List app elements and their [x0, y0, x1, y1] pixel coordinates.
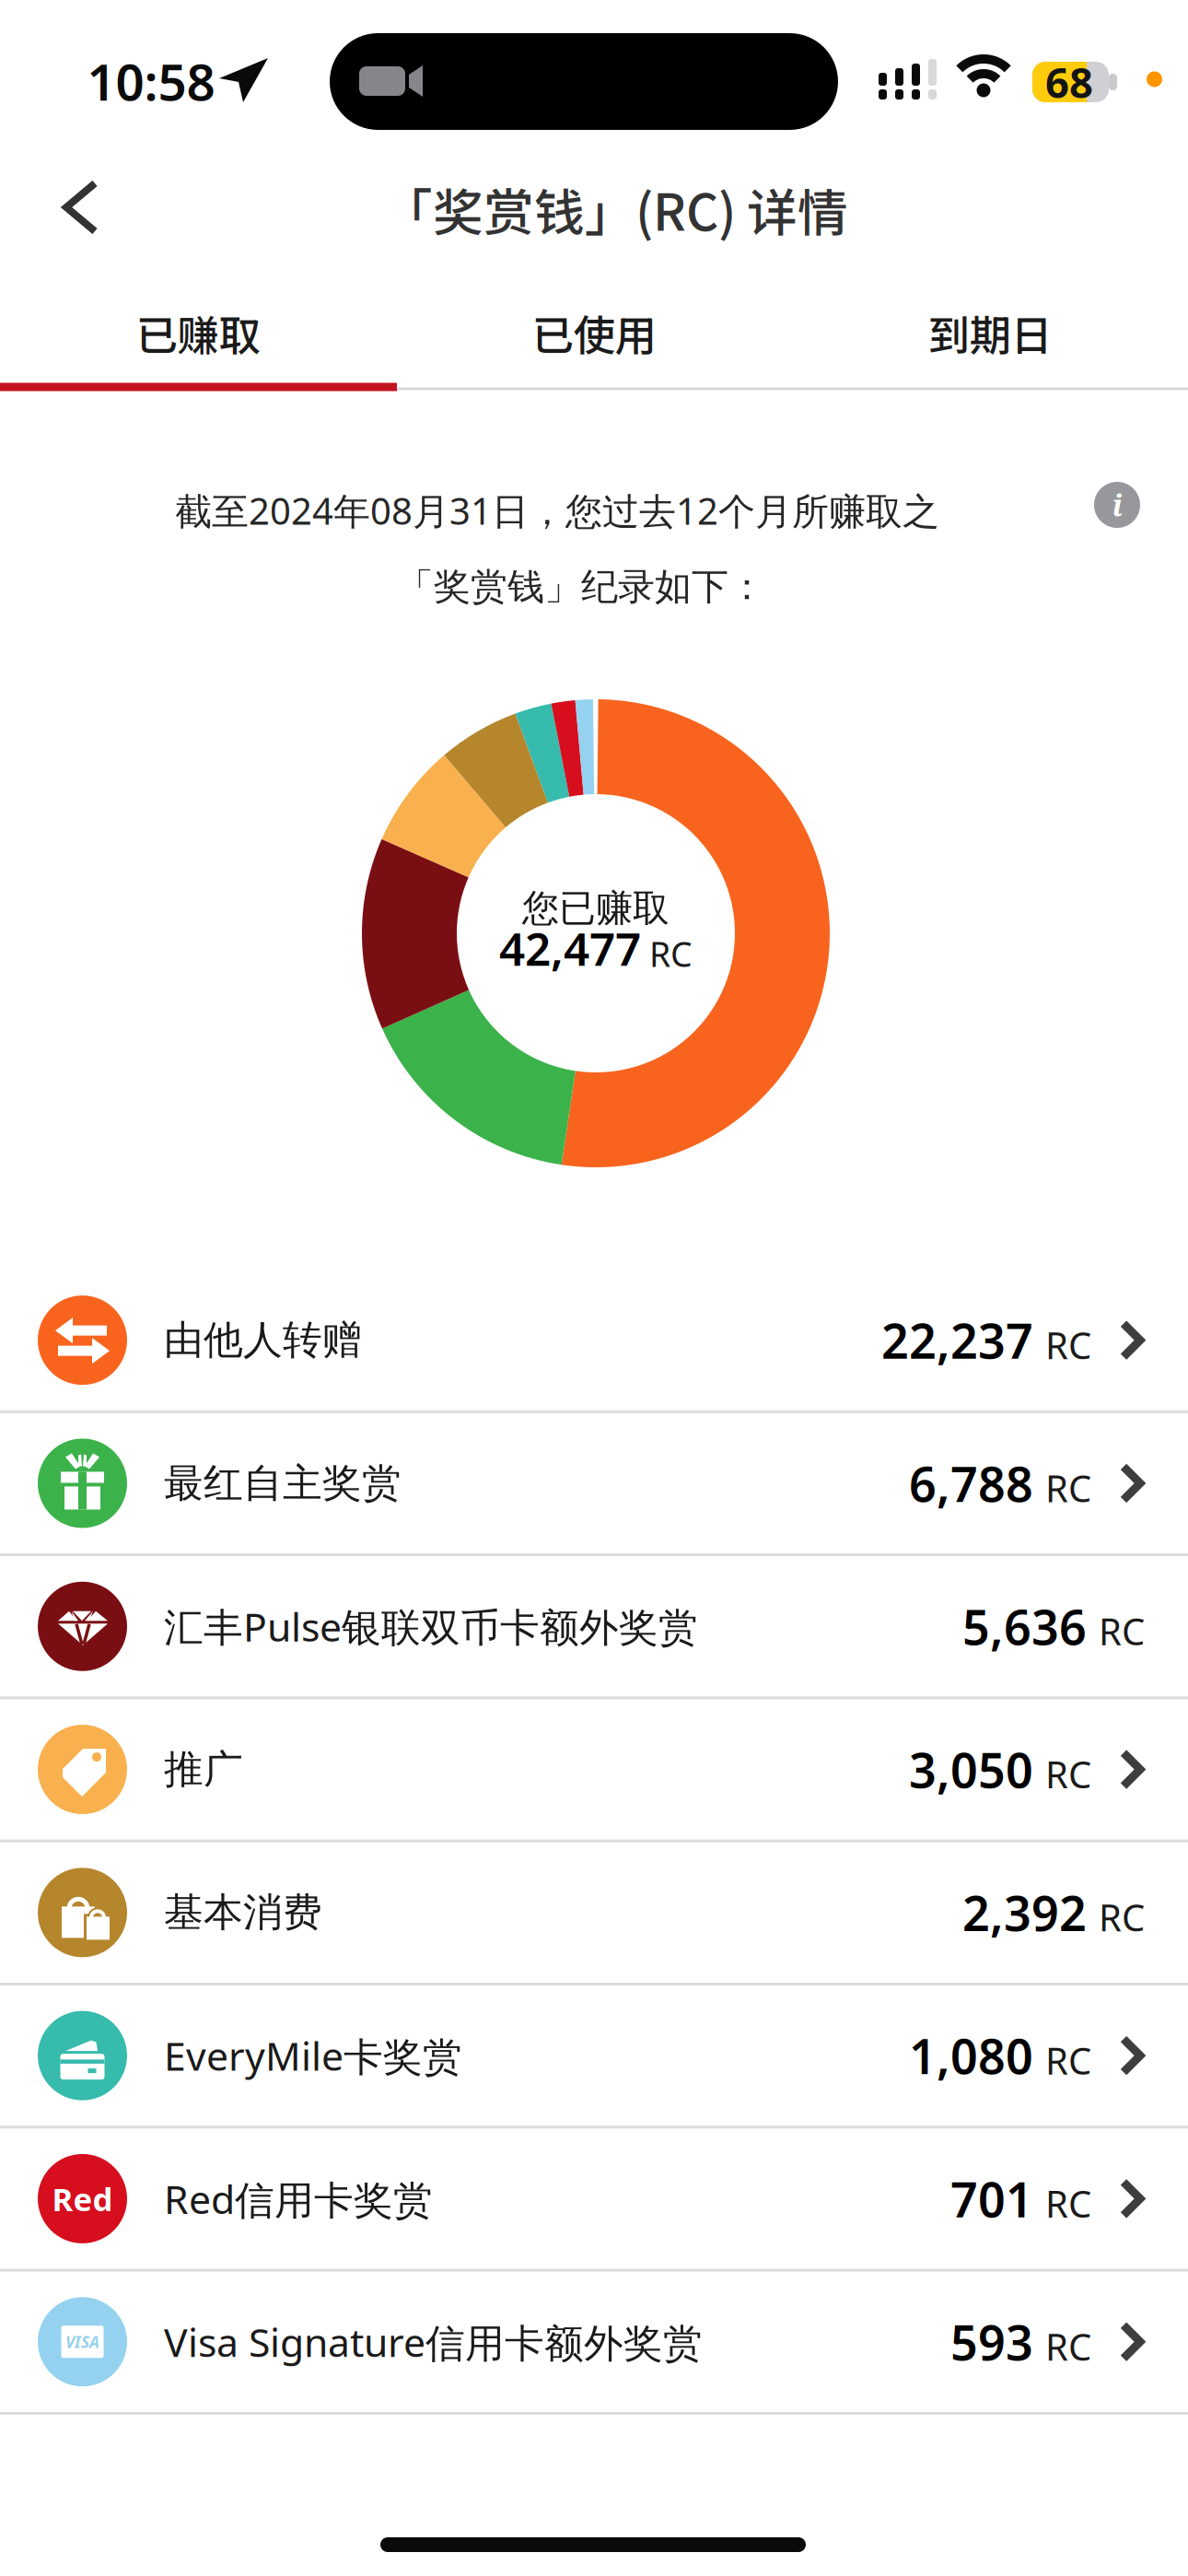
staticText: 截至2024年08月31日，您过去12个月所赚取之 — [175, 486, 939, 535]
staticText: Red — [52, 2177, 113, 2220]
staticText: 「奖赏钱」(RC) 详情 — [382, 173, 848, 246]
staticText: 5,636 — [962, 1595, 1087, 1658]
staticText: RC — [1045, 1463, 1091, 1512]
staticText: RC — [1045, 2179, 1091, 2228]
staticText: Red信用卡奖赏 — [164, 2172, 433, 2225]
button[interactable]: 推广 — [0, 1698, 1188, 1841]
staticText: Visa Signature信用卡额外奖赏 — [164, 2316, 703, 2368]
staticText: 6,788 — [909, 1451, 1033, 1515]
staticText: 68 — [1045, 54, 1093, 110]
staticText: RC — [1099, 1606, 1145, 1655]
staticText: 基本消费 — [164, 1888, 322, 1937]
staticText: 3,050 — [909, 1738, 1033, 1801]
button[interactable]: EveryMile卡奖赏 — [0, 1984, 1188, 2127]
button[interactable]: 基本消费 — [0, 1841, 1188, 1984]
staticText: RC — [1045, 1320, 1091, 1369]
staticText: 2,392 — [962, 1881, 1087, 1944]
staticText: 最红自主奖赏 — [164, 1459, 402, 1507]
staticText: 汇丰Pulse银联双币卡额外奖赏 — [164, 1600, 698, 1652]
button[interactable]: 汇丰Pulse银联双币卡额外奖赏 — [0, 1555, 1188, 1698]
staticText: RC — [1045, 2036, 1091, 2085]
button[interactable]: 已使用 — [396, 282, 792, 383]
staticText: RC — [1045, 2322, 1091, 2371]
button[interactable]: Red — [0, 2127, 1188, 2270]
staticText: 推广 — [164, 1745, 243, 1794]
staticText: 22,237 — [881, 1308, 1033, 1372]
staticText: 到期日 — [928, 302, 1052, 363]
staticText: 593 — [950, 2310, 1033, 2374]
staticText: RC — [1099, 1893, 1145, 1942]
staticText: 10:58 — [87, 48, 215, 115]
button[interactable]: 到期日 — [792, 282, 1188, 383]
button[interactable]: i — [1094, 482, 1140, 528]
staticText: 「奖赏钱」纪录如下： — [397, 564, 765, 609]
staticText: i — [1112, 485, 1122, 525]
staticText: 您已赚取 — [522, 886, 670, 931]
staticText: EveryMile卡奖赏 — [164, 2029, 462, 2082]
staticText: RC — [1045, 1750, 1091, 1799]
staticText: 701 — [950, 2167, 1033, 2231]
staticText: 已赚取 — [136, 302, 260, 363]
button[interactable]: 已赚取 — [0, 282, 396, 383]
staticText: 已使用 — [532, 302, 656, 363]
button[interactable]: VISA — [0, 2270, 1188, 2413]
button[interactable]: 由他人转赠 — [0, 1269, 1188, 1412]
staticText: 1,080 — [909, 2024, 1033, 2087]
staticText: RC — [649, 931, 693, 976]
staticText: 由他人转赠 — [164, 1316, 362, 1364]
button[interactable]: 最红自主奖赏 — [0, 1412, 1188, 1555]
staticText: VISA — [65, 2331, 99, 2353]
button[interactable] — [0, 158, 129, 259]
staticText: 42,477 — [499, 918, 641, 978]
